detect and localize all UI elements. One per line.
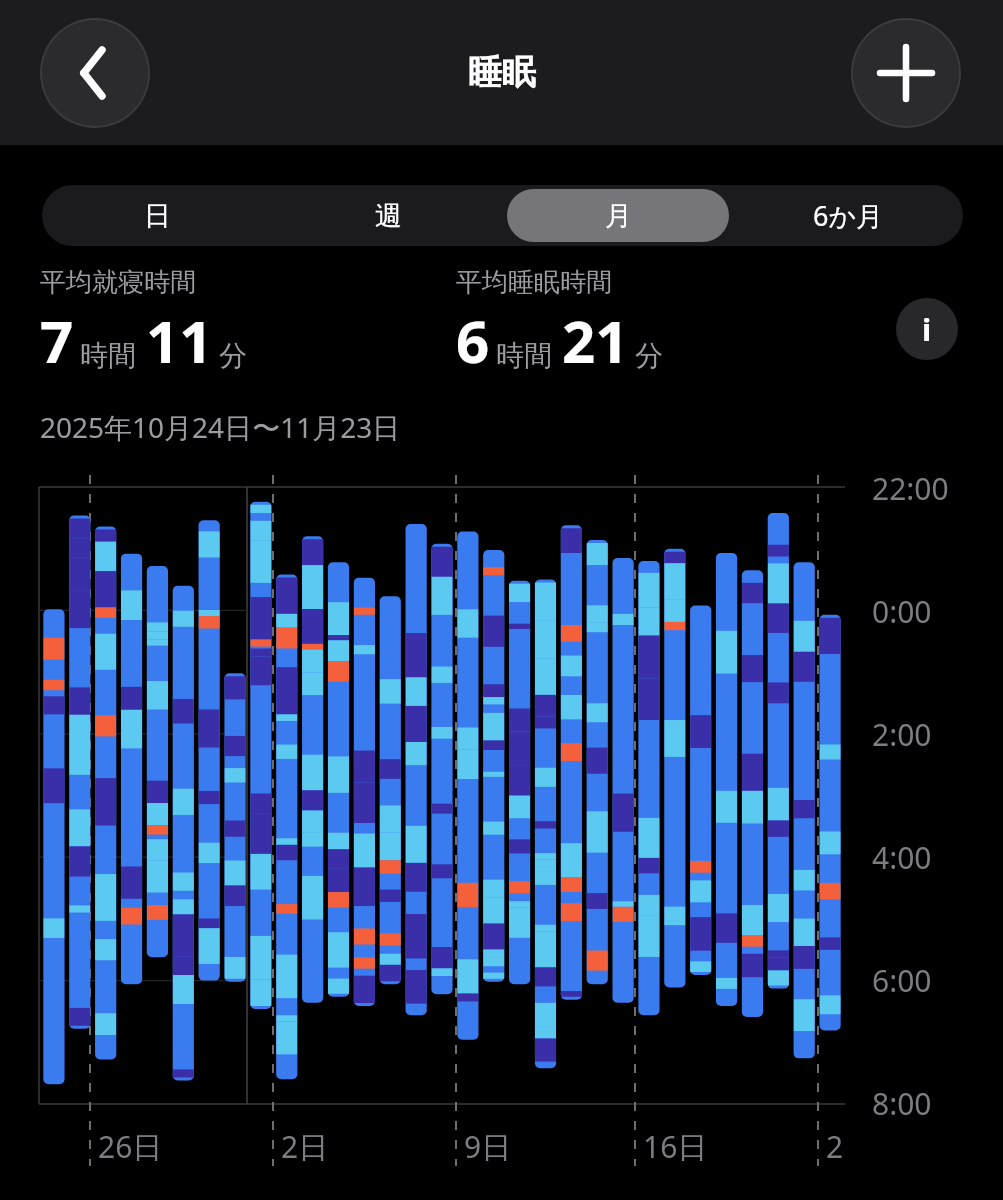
staticText: 2:00: [872, 714, 932, 755]
staticText: 26日: [98, 1126, 163, 1167]
staticText: 7: [40, 301, 74, 380]
staticText: 21: [562, 301, 629, 380]
button[interactable]: 日: [46, 189, 269, 242]
button[interactable]: 詳細情報: [896, 298, 958, 360]
staticText: 日: [144, 199, 171, 233]
button[interactable]: 戻る: [40, 18, 150, 128]
staticText: 6か月: [813, 197, 884, 234]
staticText: 平均就寝時間: [40, 266, 196, 299]
staticText: 4:00: [872, 837, 932, 878]
staticText: 時間: [80, 338, 136, 373]
staticText: 分: [219, 338, 247, 373]
staticText: 22:00: [872, 468, 949, 509]
staticText: 2025年10月24日〜11月23日: [40, 408, 401, 446]
staticText: 分: [635, 338, 663, 373]
staticText: 2: [826, 1126, 844, 1167]
staticText: 月: [605, 199, 632, 233]
staticText: i: [922, 308, 932, 350]
staticText: 時間: [496, 338, 552, 373]
staticText: 16日: [643, 1126, 708, 1167]
staticText: 平均睡眠時間: [456, 266, 612, 299]
staticText: 6:00: [872, 960, 932, 1001]
staticText: 2日: [281, 1126, 329, 1167]
button[interactable]: 月: [507, 189, 729, 242]
staticText: 0:00: [872, 591, 932, 632]
staticText: 11: [146, 301, 213, 380]
button[interactable]: 6か月: [737, 189, 959, 242]
button[interactable]: 追加: [851, 18, 961, 128]
staticText: 8:00: [872, 1083, 932, 1124]
staticText: 9日: [464, 1126, 512, 1167]
staticText: 睡眠: [468, 51, 536, 94]
button[interactable]: 週: [277, 189, 499, 242]
staticText: 6: [456, 301, 490, 380]
staticText: 週: [375, 199, 402, 233]
